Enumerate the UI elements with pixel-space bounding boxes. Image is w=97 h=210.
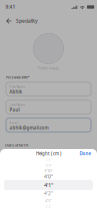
- staticText: 3'10": [44, 168, 53, 173]
- button[interactable]: First Name: [6, 82, 91, 96]
- staticText: 4'3": [45, 198, 52, 203]
- staticText: 4'4": [45, 204, 51, 209]
- staticText: Speciality: [16, 18, 38, 24]
- staticText: 3'9": [45, 163, 51, 168]
- staticText: Last Name: [9, 103, 25, 107]
- button[interactable]: Email: [6, 118, 91, 132]
- button[interactable]: Back: [3, 15, 14, 26]
- button[interactable]: Last Name: [6, 100, 91, 114]
- staticText: Paul: [9, 107, 19, 113]
- staticText: abhik@gmail.com: [9, 125, 48, 131]
- staticText: Email: [9, 121, 18, 125]
- staticText: Profile image: [38, 65, 59, 71]
- staticText: 3'8": [45, 158, 51, 163]
- staticText: Height ( cm ): [36, 150, 61, 156]
- staticText: 3'7": [46, 154, 50, 158]
- staticText: 4'2": [44, 190, 53, 197]
- staticText: Personal Info*: [5, 74, 29, 80]
- staticText: 4'0": [44, 173, 53, 180]
- staticText: 9:41: [5, 4, 15, 10]
- button[interactable]: Profile image: [33, 33, 64, 64]
- staticText: Abhik: [9, 89, 22, 95]
- staticText: First Name: [9, 85, 25, 89]
- staticText: 4'1": [44, 181, 53, 189]
- button[interactable]: Done: [77, 149, 93, 158]
- staticText: Date of birth: [5, 142, 28, 148]
- staticText: Done: [79, 150, 91, 156]
